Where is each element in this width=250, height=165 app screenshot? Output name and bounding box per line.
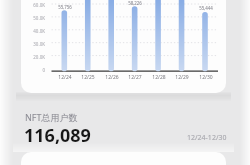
- staticText: NFT总用户数: [25, 111, 78, 123]
- staticText: 30.0K: [20, 41, 45, 47]
- button[interactable]: [21, 0, 226, 93]
- staticText: 12/30: [194, 74, 218, 81]
- staticText: 40.0K: [20, 28, 45, 34]
- staticText: 12/27: [123, 74, 147, 81]
- staticText: 12/25: [76, 74, 100, 81]
- staticText: 0: [20, 67, 45, 73]
- staticText: 55,756: [53, 4, 77, 10]
- staticText: 50.0K: [20, 15, 45, 21]
- staticText: 12/29: [170, 74, 194, 81]
- staticText: 20.0K: [20, 54, 45, 60]
- staticText: 116,089: [24, 123, 91, 148]
- staticText: 58,226: [123, 0, 147, 6]
- staticText: 12/24: [53, 74, 77, 81]
- staticText: 12/28: [147, 74, 171, 81]
- staticText: 60.0K: [20, 2, 45, 8]
- staticText: 55,444: [194, 5, 218, 11]
- staticText: 12/24-12/30: [187, 133, 227, 143]
- staticText: 12/26: [100, 74, 124, 81]
